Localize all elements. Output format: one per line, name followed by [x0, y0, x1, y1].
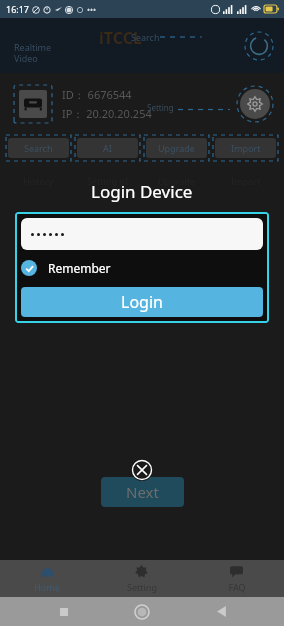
button[interactable]: Close — [131, 459, 153, 481]
staticText: 16:17 — [6, 3, 30, 15]
staticText: Realtime Video — [14, 41, 52, 64]
staticText: Remember — [48, 260, 111, 276]
button[interactable]: FAQ — [189, 560, 284, 597]
staticText: Home — [34, 581, 60, 593]
button[interactable]: Login — [21, 287, 263, 317]
staticText: Search — [24, 142, 53, 154]
staticText: Setting — [147, 102, 174, 113]
staticText: Login Device — [91, 180, 193, 203]
staticText: ID： 6676544 — [62, 87, 132, 102]
staticText: Setting — [127, 581, 157, 593]
button[interactable]: Recents — [49, 597, 79, 626]
button[interactable]: Settings — [236, 85, 274, 123]
button[interactable]: Device — [14, 85, 52, 123]
button[interactable] — [21, 218, 263, 250]
staticText: Import — [231, 142, 261, 154]
staticText: iTCCL — [99, 27, 142, 49]
staticText: Next — [126, 482, 159, 502]
button[interactable]: Back — [206, 597, 236, 626]
staticText: AI — [103, 142, 112, 154]
button[interactable]: Home — [0, 560, 94, 597]
staticText: IP： 20.20.20.254 — [62, 106, 152, 121]
button[interactable]: Import — [213, 135, 278, 161]
button[interactable]: Setting — [94, 560, 189, 597]
staticText: Login — [121, 291, 163, 313]
button[interactable]: Upgrade — [144, 135, 209, 161]
staticText: Upgrade — [158, 142, 195, 154]
button[interactable]: AI — [75, 135, 140, 161]
staticText: Setting of — [87, 175, 128, 187]
staticText: Upgrade — [158, 175, 195, 187]
staticText: FAQ — [228, 581, 246, 593]
button[interactable]: Remember — [21, 260, 263, 276]
button[interactable]: Home — [127, 597, 157, 626]
button[interactable]: Next — [101, 477, 184, 507]
staticText: Search — [131, 31, 160, 43]
staticText: ••• — [87, 4, 97, 15]
button[interactable]: Refresh — [244, 31, 274, 61]
button[interactable]: Search — [6, 135, 71, 161]
